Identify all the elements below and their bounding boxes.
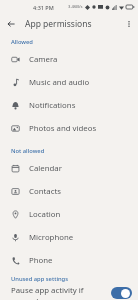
button[interactable]: More options: [122, 17, 135, 30]
staticText: 3.46B/s: [68, 4, 83, 10]
staticText: Camera: [29, 54, 58, 65]
button[interactable]: Calendar: [0, 157, 138, 180]
button[interactable]: Contacts: [0, 180, 138, 203]
button[interactable]: Location: [0, 203, 138, 226]
staticText: Location: [29, 209, 61, 220]
staticText: Calendar: [29, 163, 62, 174]
staticText: Phone: [29, 255, 53, 266]
button[interactable]: Camera: [0, 48, 138, 71]
staticText: Not allowed: [11, 147, 45, 155]
staticText: 4:31 PM: [33, 4, 54, 11]
staticText: Music and audio: [29, 77, 90, 88]
button[interactable]: Back: [4, 17, 17, 30]
button[interactable]: Phone: [0, 249, 138, 272]
staticText: Unused app settings: [11, 275, 69, 283]
button[interactable]: Music and audio: [0, 71, 138, 94]
button[interactable]: Microphone: [0, 226, 138, 249]
button[interactable]: Photos and videos: [0, 117, 138, 140]
staticText: Pause app activity if unused: [11, 285, 107, 300]
staticText: Contacts: [29, 186, 61, 197]
button[interactable]: Notifications: [0, 94, 138, 117]
button[interactable]: Pause app activity if unused: [0, 285, 138, 300]
button[interactable]: Pause app activity if unused toggle: [111, 287, 132, 299]
staticText: Photos and videos: [29, 123, 97, 134]
staticText: App permissions: [25, 18, 92, 30]
staticText: Notifications: [29, 100, 76, 111]
staticText: Microphone: [29, 232, 74, 243]
staticText: Allowed: [11, 38, 33, 46]
